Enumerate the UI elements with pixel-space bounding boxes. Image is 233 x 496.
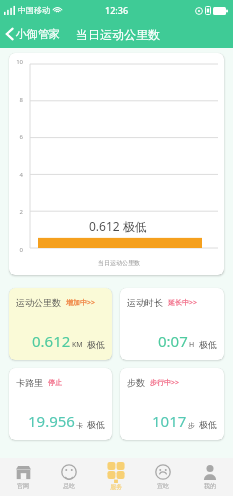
button[interactable]: 小御管家 (0, 24, 62, 44)
button[interactable]: 我的 (186, 458, 233, 496)
button[interactable]: 卡路里 (9, 368, 112, 440)
staticText: 8 (12, 96, 23, 104)
button[interactable]: 运动时长 (120, 288, 224, 360)
staticText: H (189, 340, 195, 350)
button[interactable]: 宜吃 (139, 458, 186, 496)
button[interactable]: 忌吃 (46, 458, 92, 496)
staticText: 官网 (17, 482, 29, 490)
staticText: 极低 (87, 339, 105, 350)
staticText: 卡 (76, 421, 83, 430)
staticText: 宜吃 (157, 482, 169, 490)
staticText: 步行中>> (150, 378, 180, 388)
staticText: 步 (188, 421, 195, 430)
staticText: 运动公里数 (16, 297, 61, 308)
staticText: 0:07 (158, 331, 188, 351)
staticText: 中国移动 (18, 5, 50, 15)
staticText: 增加中>> (66, 298, 96, 308)
staticText: 忌吃 (63, 482, 75, 490)
staticText: 6 (12, 133, 23, 141)
staticText: 我的 (204, 482, 216, 490)
button[interactable]: 官网 (0, 458, 46, 496)
staticText: 卡路里 (16, 377, 43, 388)
staticText: KM (72, 340, 83, 350)
staticText: 小御管家 (16, 27, 60, 41)
staticText: 2 (12, 208, 23, 216)
staticText: 停止 (48, 378, 62, 387)
staticText: 0.612 极低 (89, 218, 147, 234)
button[interactable]: 服务 (92, 458, 139, 496)
staticText: 1017 (152, 411, 187, 431)
staticText: 0 (12, 246, 23, 254)
staticText: 服务 (110, 483, 122, 491)
button[interactable]: 步数 (120, 368, 224, 440)
staticText: 极低 (87, 419, 105, 430)
staticText: 极低 (199, 419, 217, 430)
button[interactable]: 运动公里数 (9, 288, 112, 360)
staticText: 当日运动公里数 (98, 259, 140, 267)
staticText: 10 (12, 58, 23, 66)
staticText: 步数 (127, 377, 145, 388)
staticText: 12:36 (105, 4, 129, 16)
staticText: 0.612 (32, 331, 71, 351)
staticText: 延长中>> (168, 298, 198, 308)
staticText: 当日运动公里数 (76, 27, 160, 42)
staticText: 运动时长 (127, 297, 163, 308)
staticText: 4 (12, 171, 23, 179)
staticText: 极低 (199, 339, 217, 350)
staticText: 19.956 (28, 411, 75, 431)
